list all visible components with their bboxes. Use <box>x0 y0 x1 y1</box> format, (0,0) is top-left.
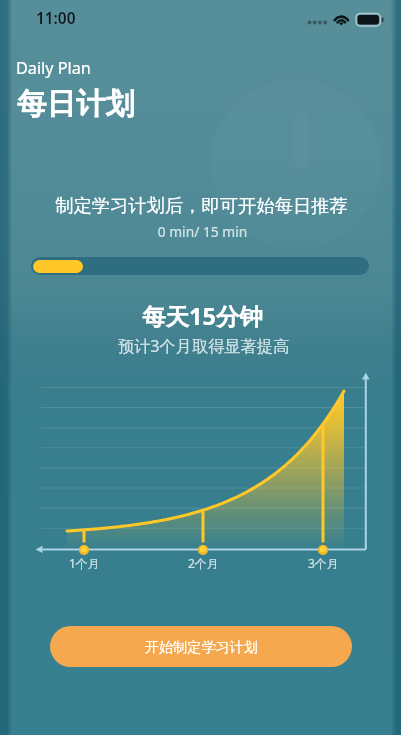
button[interactable]: 开始制定学习计划 <box>50 626 352 667</box>
staticText: 2个月 <box>188 555 219 571</box>
staticText: 3个月 <box>308 555 339 571</box>
staticText: 每天15分钟 <box>2 300 401 332</box>
staticText: Daily Plan <box>16 57 91 79</box>
staticText: 每日计划 <box>17 86 135 123</box>
staticText: 预计3个月取得显著提高 <box>3 335 401 357</box>
button[interactable]: Daily progress <box>31 257 369 275</box>
staticText: 0 min/ 15 min <box>2 222 401 241</box>
staticText: 制定学习计划后，即可开始每日推荐 <box>1 194 401 217</box>
staticText: 开始制定学习计划 <box>145 638 258 656</box>
staticText: 1个月 <box>69 555 100 571</box>
staticText: 11:00 <box>36 8 76 29</box>
